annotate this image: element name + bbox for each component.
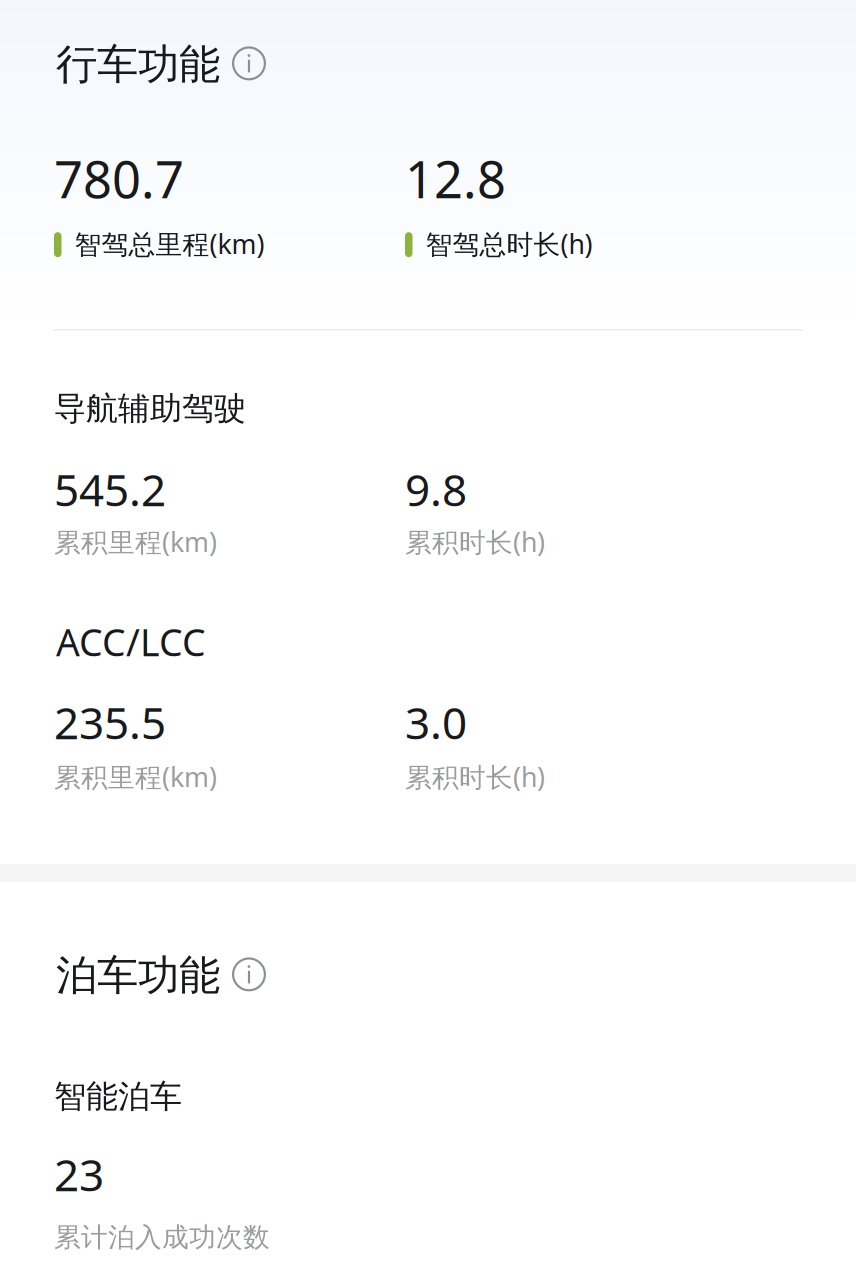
- staticText: 导航辅助驾驶: [54, 389, 246, 428]
- staticText: 235.5: [54, 693, 166, 751]
- staticText: 泊车功能: [56, 950, 220, 1001]
- staticText: ACC/LCC: [56, 617, 206, 667]
- staticText: 智驾总里程(km): [74, 226, 264, 261]
- staticText: 3.0: [405, 693, 467, 751]
- staticText: 智驾总时长(h): [425, 226, 592, 261]
- staticText: 累积时长(h): [405, 524, 545, 559]
- staticText: 780.7: [54, 145, 184, 212]
- staticText: 行车功能: [56, 39, 220, 90]
- staticText: 累计泊入成功次数: [54, 1221, 270, 1254]
- button[interactable]: 行车功能，查看说明: [56, 39, 266, 90]
- staticText: 12.8: [405, 145, 506, 212]
- staticText: 累积里程(km): [54, 759, 217, 794]
- staticText: 累积时长(h): [405, 759, 545, 794]
- button[interactable]: 泊车功能，查看说明: [56, 950, 266, 1001]
- staticText: 23: [54, 1145, 104, 1203]
- staticText: 9.8: [405, 460, 467, 518]
- staticText: 智能泊车: [54, 1077, 182, 1116]
- staticText: 累积里程(km): [54, 524, 217, 559]
- staticText: 545.2: [54, 460, 166, 518]
